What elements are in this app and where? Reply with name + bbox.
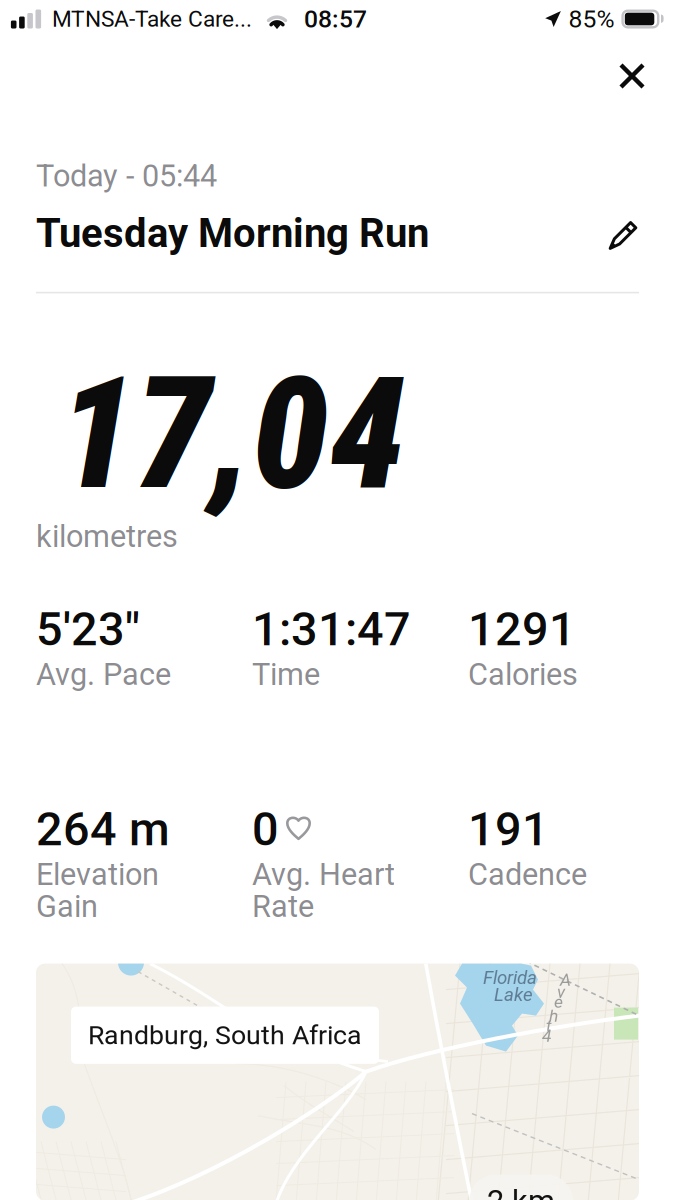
staticText: 0 [252,802,279,857]
staticText: 17,04 [58,343,406,525]
staticText: v [557,982,565,1002]
staticText: 5'23" [36,602,140,657]
staticText: e [554,992,563,1012]
staticText: 85% [568,4,614,33]
button[interactable]: Close [605,49,659,103]
staticText: Calories [468,657,578,693]
button[interactable]: Edit [608,216,639,250]
staticText: 1291 [468,602,576,657]
staticText: kilometres [36,519,178,555]
staticText: Today - 05:44 [36,158,217,194]
staticText: 1:31:47 [252,602,411,657]
staticText: Avg. Pace [36,657,171,693]
staticText: Rate [252,889,314,925]
staticText: 08:57 [304,4,367,33]
staticText: Florida [483,967,537,988]
staticText: Tuesday Morning Run [36,210,429,257]
staticText: Elevation [36,857,159,893]
staticText: Gain [36,889,98,925]
staticText: t [546,1016,552,1036]
staticText: h [549,1006,558,1026]
staticText: MTNSA-Take Care... [52,6,252,32]
staticText: Lake [494,984,533,1005]
staticText: 191 [468,802,549,857]
staticText: Avg. Heart [252,857,395,893]
staticText: A [560,970,571,990]
staticText: Time [252,657,320,693]
staticText: Randburg, South Africa [88,1020,362,1051]
staticText: Cadence [468,857,587,893]
staticText: 2 km [487,1184,555,1200]
staticText: 4 [542,1026,551,1046]
staticText: 264 m [36,802,170,857]
